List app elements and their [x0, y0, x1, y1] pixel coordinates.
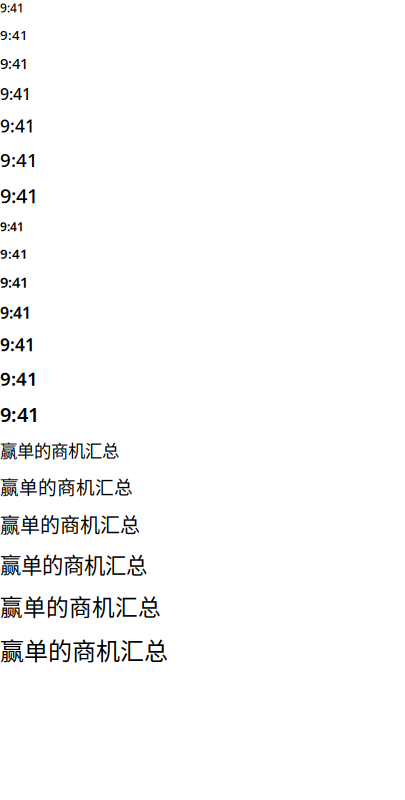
staticText: 9:41	[0, 26, 28, 44]
staticText: 9:41	[0, 0, 24, 16]
staticText: 9:41	[0, 366, 38, 391]
staticText: 9:41	[0, 272, 28, 292]
staticText: 9:41	[0, 54, 28, 73]
staticText: 9:41	[0, 83, 31, 104]
staticText: 9:41	[0, 401, 39, 427]
staticText: 9:41	[0, 333, 35, 356]
staticText: 赢单的商机汇总	[0, 473, 133, 500]
staticText: 9:41	[0, 147, 38, 172]
staticText: 9:41	[0, 182, 38, 209]
staticText: 9:41	[0, 302, 31, 323]
staticText: 赢单的商机汇总	[0, 589, 161, 622]
staticText: 9:41	[0, 114, 35, 137]
staticText: 赢单的商机汇总	[0, 510, 140, 539]
staticText: 9:41	[0, 245, 28, 262]
staticText: 赢单的商机汇总	[0, 549, 147, 579]
staticText: 赢单的商机汇总	[0, 632, 168, 667]
staticText: 9:41	[0, 219, 24, 235]
staticText: 赢单的商机汇总	[0, 437, 119, 463]
